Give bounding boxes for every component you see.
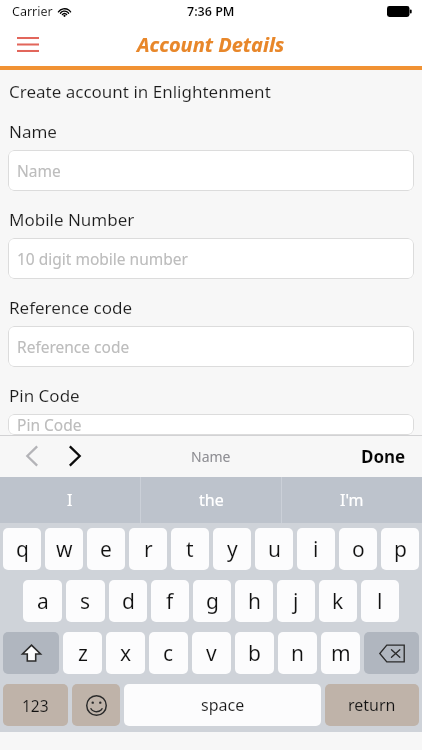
staticText: return: [348, 694, 396, 716]
button[interactable]: x: [106, 632, 145, 674]
staticText: l: [377, 587, 383, 616]
button[interactable]: 123: [3, 684, 68, 726]
staticText: space: [201, 694, 245, 716]
button[interactable]: Shift: [3, 632, 59, 674]
staticText: Reference code: [17, 336, 130, 357]
staticText: r: [144, 535, 153, 564]
staticText: u: [268, 535, 281, 564]
staticText: v: [206, 639, 217, 668]
staticText: h: [248, 587, 261, 616]
button[interactable]: p: [381, 528, 419, 570]
staticText: Reference code: [9, 296, 133, 319]
staticText: 10 digit mobile number: [17, 248, 188, 269]
staticText: a: [37, 587, 49, 616]
staticText: Name: [9, 120, 57, 143]
staticText: c: [163, 639, 174, 668]
button[interactable]: Done: [353, 439, 414, 474]
button[interactable]: i: [297, 528, 335, 570]
button[interactable]: l: [361, 580, 399, 622]
staticText: t: [186, 535, 194, 564]
button[interactable]: Name: [8, 150, 414, 191]
staticText: j: [293, 587, 299, 616]
staticText: Account Details: [137, 31, 285, 58]
button[interactable]: Emoji: [72, 684, 120, 726]
staticText: e: [100, 535, 112, 564]
staticText: d: [122, 587, 135, 616]
button[interactable]: r: [129, 528, 167, 570]
button[interactable]: 10 digit mobile number: [8, 238, 414, 279]
button[interactable]: g: [193, 580, 231, 622]
staticText: Mobile Number: [9, 208, 135, 231]
button[interactable]: v: [192, 632, 231, 674]
staticText: o: [352, 535, 365, 564]
button[interactable]: a: [23, 580, 62, 622]
staticText: I'm: [340, 489, 364, 511]
button[interactable]: f: [151, 580, 189, 622]
button[interactable]: w: [45, 528, 83, 570]
staticText: Name: [191, 447, 231, 466]
staticText: Done: [361, 445, 406, 468]
staticText: f: [166, 587, 174, 616]
button[interactable]: o: [339, 528, 377, 570]
button[interactable]: the: [141, 477, 281, 523]
button[interactable]: I'm: [282, 477, 422, 523]
button[interactable]: b: [235, 632, 274, 674]
button[interactable]: h: [235, 580, 273, 622]
button[interactable]: Backspace: [364, 632, 419, 674]
staticText: s: [80, 587, 91, 616]
staticText: i: [313, 535, 319, 564]
button[interactable]: j: [277, 580, 315, 622]
button[interactable]: space: [124, 684, 321, 726]
button[interactable]: u: [255, 528, 293, 570]
button[interactable]: n: [278, 632, 317, 674]
staticText: n: [291, 639, 304, 668]
button[interactable]: Previous field: [14, 437, 50, 475]
staticText: x: [120, 639, 132, 668]
staticText: m: [331, 639, 351, 668]
staticText: q: [16, 535, 29, 564]
staticText: I: [67, 489, 73, 511]
button[interactable]: m: [321, 632, 360, 674]
button[interactable]: Menu: [11, 29, 45, 59]
button[interactable]: t: [171, 528, 209, 570]
staticText: 7:36 PM: [187, 3, 235, 20]
button[interactable]: q: [3, 528, 41, 570]
staticText: p: [394, 535, 407, 564]
button[interactable]: c: [149, 632, 188, 674]
staticText: b: [248, 639, 261, 668]
button[interactable]: k: [319, 580, 357, 622]
staticText: y: [227, 535, 238, 564]
staticText: w: [56, 535, 73, 564]
button[interactable]: y: [213, 528, 251, 570]
button[interactable]: return: [325, 684, 419, 726]
staticText: Pin Code: [17, 414, 82, 435]
button[interactable]: Pin Code: [8, 414, 414, 435]
staticText: Pin Code: [9, 384, 80, 407]
staticText: Carrier: [12, 3, 53, 20]
button[interactable]: I: [0, 477, 140, 523]
button[interactable]: Reference code: [8, 326, 414, 367]
button[interactable]: Next field: [56, 437, 92, 475]
button[interactable]: e: [87, 528, 125, 570]
staticText: g: [206, 587, 219, 616]
button[interactable]: d: [109, 580, 147, 622]
staticText: k: [332, 587, 344, 616]
button[interactable]: z: [63, 632, 102, 674]
staticText: Create account in Enlightenment: [9, 80, 271, 103]
staticText: Name: [17, 160, 61, 181]
button[interactable]: s: [66, 580, 105, 622]
staticText: 123: [22, 695, 49, 716]
staticText: the: [199, 489, 224, 511]
staticText: z: [78, 639, 88, 668]
